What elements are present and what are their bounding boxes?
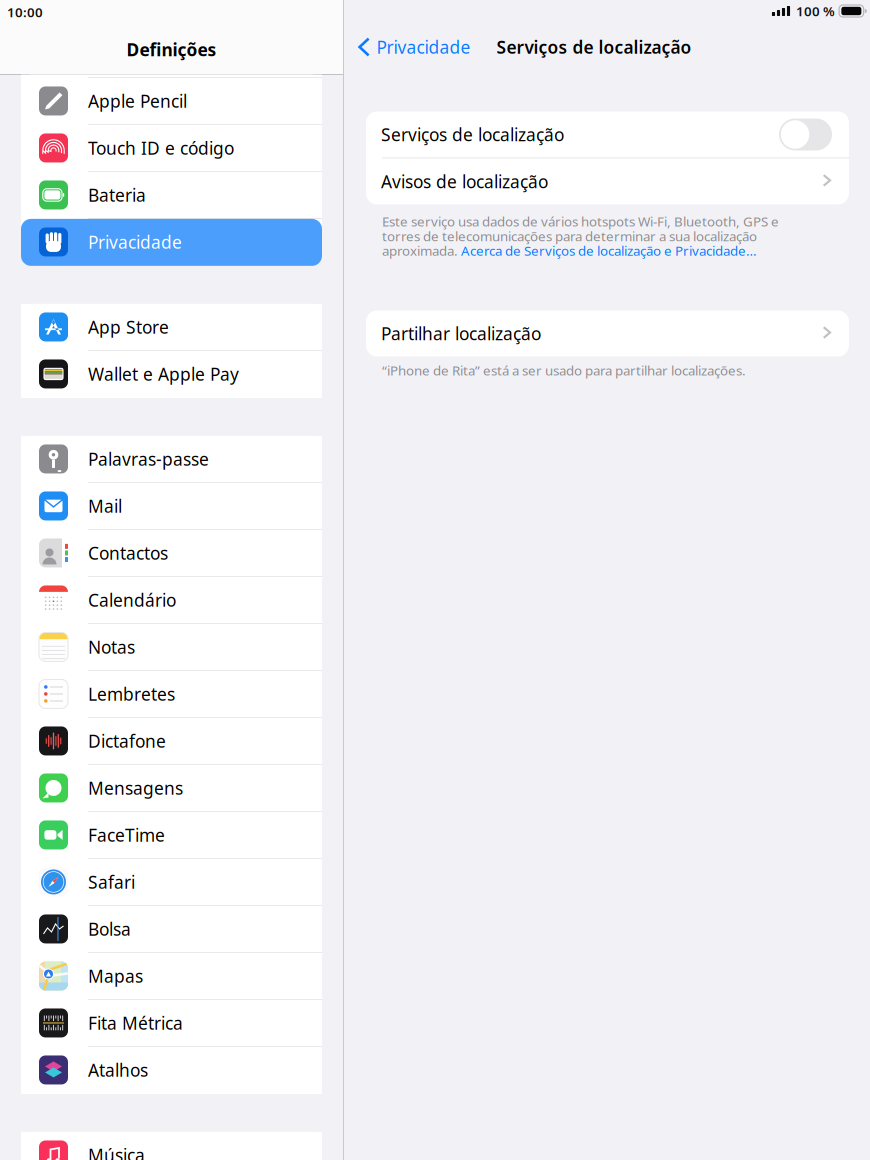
button[interactable]: Privacidade [21, 219, 322, 266]
button[interactable]: Palavras-passe [21, 436, 322, 483]
staticText: Partilhar localização [381, 322, 541, 345]
staticText: Serviços de localização [496, 35, 691, 58]
staticText: Safari [88, 870, 135, 893]
staticText: Música [88, 1143, 145, 1160]
staticText: Definições [126, 38, 216, 61]
staticText: Wallet e Apple Pay [88, 362, 239, 385]
staticText: Notas [88, 635, 135, 658]
button[interactable]: App Store [21, 304, 322, 351]
button[interactable]: Wallet e Apple Pay [21, 351, 322, 398]
staticText: Contactos [88, 541, 168, 564]
staticText: Dictafone [88, 729, 166, 752]
button[interactable]: Mail [21, 483, 322, 530]
staticText: Privacidade [376, 35, 470, 58]
button[interactable]: Calendário [21, 577, 322, 624]
button[interactable]: FaceTime [21, 812, 322, 859]
button[interactable]: Contactos [21, 530, 322, 577]
staticText: “iPhone de Rita” está a ser usado para p… [382, 361, 746, 379]
button[interactable]: Fita Métrica [21, 1000, 322, 1047]
staticText: Este serviço usa dados de vários hotspot… [382, 212, 779, 230]
staticText: Acerca de Serviços de localização e Priv… [461, 242, 757, 259]
staticText: Privacidade [88, 230, 182, 253]
staticText: Calendário [88, 588, 176, 611]
button[interactable]: Touch ID e código [21, 125, 322, 172]
button[interactable]: Mapas [21, 953, 322, 1000]
staticText: 10:00 [7, 3, 43, 21]
button[interactable]: Avisos de localização [366, 158, 849, 204]
staticText: Mail [88, 494, 122, 517]
button[interactable]: Serviços de localização [779, 118, 832, 150]
button[interactable]: Lembretes [21, 671, 322, 718]
button[interactable]: Bateria [21, 172, 322, 219]
staticText: Bolsa [88, 917, 131, 940]
staticText: Lembretes [88, 682, 175, 705]
button[interactable]: Dictafone [21, 718, 322, 765]
button[interactable]: Atalhos [21, 1047, 322, 1094]
staticText: Mensagens [88, 776, 183, 799]
staticText: Serviços de localização [381, 123, 564, 146]
button[interactable]: Apple Pencil [21, 78, 322, 125]
staticText: App Store [88, 315, 169, 338]
button[interactable]: Partilhar localização [366, 310, 849, 356]
button[interactable]: Mensagens [21, 765, 322, 812]
button[interactable]: Bolsa [21, 906, 322, 953]
staticText: Apple Pencil [88, 89, 187, 112]
staticText: aproximada. [382, 242, 461, 259]
staticText: Avisos de localização [381, 170, 548, 193]
button[interactable]: Safari [21, 859, 322, 906]
staticText: torres de telecomunicações para determin… [382, 227, 757, 245]
staticText: Bateria [88, 183, 146, 206]
staticText: Fita Métrica [88, 1011, 183, 1034]
button[interactable]: Acerca de Serviços de localização e Priv… [461, 242, 757, 259]
staticText: Palavras-passe [88, 447, 209, 470]
staticText: 100 % [796, 2, 835, 20]
staticText: Touch ID e código [88, 136, 234, 159]
staticText: FaceTime [88, 823, 165, 846]
button[interactable]: Notas [21, 624, 322, 671]
staticText: Mapas [88, 964, 143, 987]
staticText: Atalhos [88, 1058, 148, 1081]
button[interactable]: Música [21, 1132, 322, 1160]
button[interactable]: Privacidade [344, 29, 470, 64]
